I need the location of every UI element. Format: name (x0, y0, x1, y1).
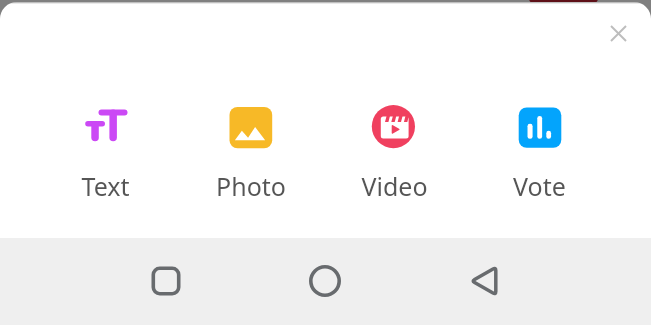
button[interactable]: Home (290, 246, 360, 316)
button[interactable]: Vote (479, 102, 599, 203)
button[interactable]: Recents (131, 246, 201, 316)
staticText: Photo (216, 169, 286, 203)
staticText: Text (81, 169, 130, 203)
button[interactable]: Photo (191, 102, 311, 203)
staticText: Video (361, 169, 428, 203)
button[interactable]: Close (600, 15, 636, 51)
button[interactable]: Video (334, 102, 454, 203)
button[interactable]: Text (45, 102, 165, 203)
button[interactable]: Back (449, 246, 519, 316)
staticText: Vote (513, 169, 566, 203)
